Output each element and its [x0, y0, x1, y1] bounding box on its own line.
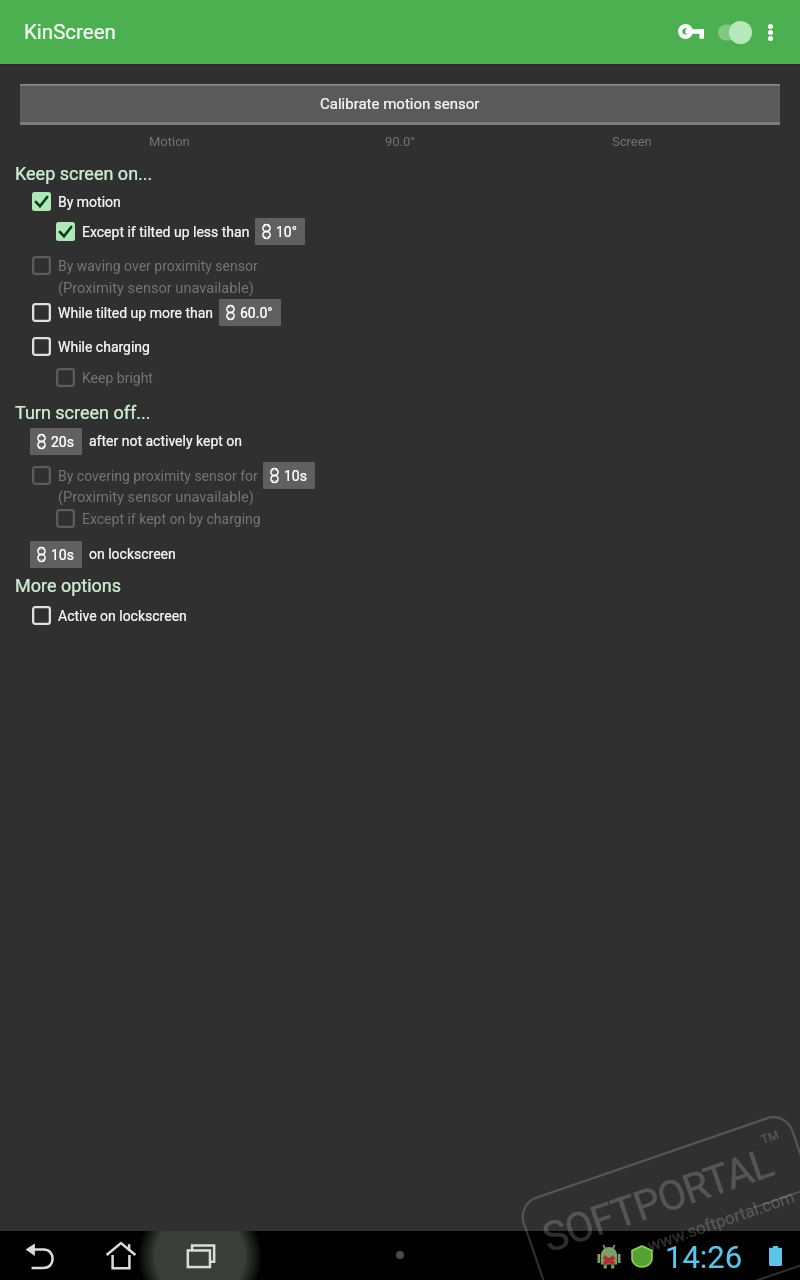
staticText: 60.0° — [240, 305, 273, 321]
staticText: Calibrate motion sensor — [320, 95, 480, 113]
button[interactable]: By waving over proximity sensor — [26, 251, 258, 280]
button[interactable]: Calibrate motion sensor — [20, 84, 780, 125]
staticText: on lockscreen — [89, 546, 176, 562]
staticText: SOFTPORTAL — [536, 1139, 779, 1262]
button[interactable]: 20s — [30, 428, 82, 455]
button[interactable]: By covering proximity sensor for — [26, 461, 315, 490]
button[interactable]: Back — [0, 1231, 80, 1280]
staticText: 90.0° — [385, 134, 416, 149]
staticText: TM — [759, 1128, 781, 1147]
staticText: KinScreen — [24, 20, 116, 44]
button[interactable]: Active on lockscreen — [26, 601, 187, 630]
staticText: after not actively kept on — [89, 433, 243, 449]
staticText: (Proximity sensor unavailable) — [58, 488, 254, 505]
staticText: Turn screen off... — [15, 402, 151, 423]
staticText: Motion — [149, 134, 190, 149]
staticText: 10s — [51, 547, 74, 563]
button[interactable]: Except if kept on by charging — [50, 504, 261, 533]
staticText: Except if kept on by charging — [82, 511, 261, 527]
staticText: (Proximity sensor unavailable) — [58, 279, 254, 296]
staticText: By waving over proximity sensor — [58, 258, 258, 274]
button[interactable]: Keep bright — [50, 363, 153, 392]
button[interactable]: Except if tilted up less than — [50, 217, 305, 246]
staticText: 14:26 — [665, 1239, 743, 1275]
staticText: 10° — [276, 224, 297, 240]
staticText: While tilted up more than — [58, 305, 214, 321]
button[interactable]: Unlock pro version — [664, 0, 718, 64]
staticText: 20s — [51, 434, 74, 450]
button[interactable]: 10s — [263, 462, 315, 489]
staticText: While charging — [58, 339, 150, 355]
button[interactable]: While tilted up more than — [26, 298, 281, 327]
staticText: Screen — [612, 134, 652, 149]
button[interactable]: 20s — [30, 427, 243, 455]
button[interactable]: 10° — [255, 218, 305, 245]
button[interactable]: Home — [81, 1231, 161, 1280]
button[interactable]: By motion — [26, 187, 121, 216]
staticText: www.softportal.com — [645, 1186, 798, 1255]
button[interactable]: 60.0° — [219, 299, 281, 326]
staticText: 10s — [284, 468, 307, 484]
staticText: Keep bright — [82, 370, 153, 386]
button[interactable]: While charging — [26, 332, 150, 361]
button[interactable]: 10s — [30, 541, 82, 568]
button[interactable]: Recent apps — [161, 1231, 241, 1280]
button[interactable]: 10s — [30, 540, 176, 568]
button[interactable]: More options — [752, 0, 788, 64]
staticText: Except if tilted up less than — [82, 224, 250, 240]
staticText: By motion — [58, 194, 121, 210]
staticText: Keep screen on... — [15, 163, 153, 184]
staticText: More options — [15, 575, 122, 596]
button[interactable]: Enable KinScreen service — [718, 0, 752, 64]
staticText: By covering proximity sensor for — [58, 468, 258, 484]
staticText: Active on lockscreen — [58, 608, 187, 624]
